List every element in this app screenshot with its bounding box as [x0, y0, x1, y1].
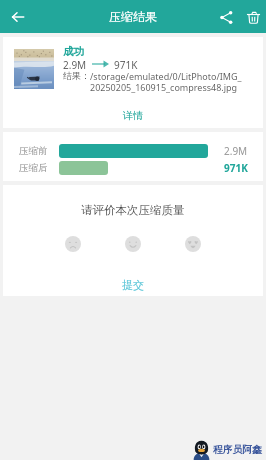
staticText: 971K	[224, 161, 248, 175]
button[interactable]: 详情	[3, 102, 263, 128]
staticText: 压缩前	[19, 145, 48, 157]
staticText: 请评价本次压缩质量	[81, 203, 185, 217]
staticText: 详情	[123, 109, 143, 122]
button[interactable]: Rating option 3	[185, 236, 201, 252]
button[interactable]: Share	[215, 6, 237, 28]
button[interactable]: Rating option 1	[65, 236, 81, 252]
staticText: 2.9M	[63, 58, 87, 70]
button[interactable]: Rating option 2	[125, 236, 141, 252]
staticText: 2.9M	[224, 144, 248, 158]
button[interactable]: Delete	[242, 6, 264, 28]
staticText: 压缩后	[19, 162, 48, 174]
staticText: 971K	[114, 58, 138, 70]
staticText: 成功	[63, 45, 84, 58]
staticText: 提交	[122, 278, 144, 292]
button[interactable]: 提交	[108, 274, 158, 296]
staticText: /storage/emulated/0/LitPhoto/IMG_ 202502…	[90, 70, 242, 94]
button[interactable]: Back	[6, 5, 30, 29]
staticText: 程序员阿鑫	[213, 444, 262, 456]
staticText: 压缩结果	[109, 9, 157, 24]
staticText: 结果：	[63, 70, 90, 81]
